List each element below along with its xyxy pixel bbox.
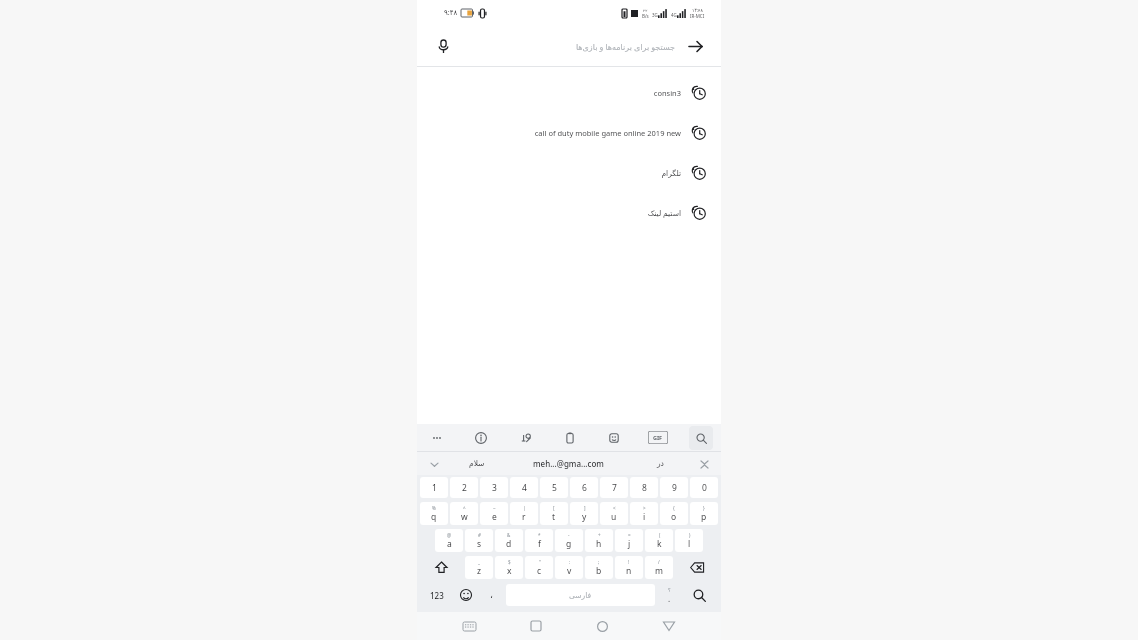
button[interactable]: تلگرام: [417, 153, 721, 193]
button[interactable]: Recent apps: [522, 612, 550, 640]
staticText: call of duty mobile game online 2019 new: [429, 128, 681, 138]
staticText: v: [567, 565, 572, 577]
button[interactable]: =: [615, 529, 643, 552]
button[interactable]: _: [465, 556, 493, 579]
button[interactable]: Expand suggestions: [426, 456, 442, 472]
staticText: k: [657, 538, 662, 550]
staticText: ۲۲: [643, 8, 648, 13]
button[interactable]: Search: [682, 583, 717, 607]
button[interactable]: Voice search: [429, 32, 457, 60]
staticText: ): [689, 532, 691, 538]
button[interactable]: 8: [630, 477, 658, 498]
button[interactable]: >: [630, 502, 658, 525]
staticText: .: [668, 593, 671, 604]
button[interactable]: 2: [450, 477, 478, 498]
button[interactable]: {: [660, 502, 688, 525]
button[interactable]: ~: [480, 502, 508, 525]
button[interactable]: More options: [425, 426, 449, 450]
button[interactable]: [: [540, 502, 568, 525]
button[interactable]: 6: [570, 477, 598, 498]
button[interactable]: ^: [450, 502, 478, 525]
button[interactable]: |: [510, 502, 538, 525]
button[interactable]: meh...@gma...com: [512, 452, 625, 475]
button[interactable]: سلام: [442, 452, 512, 475]
button[interactable]: (: [645, 529, 673, 552]
button[interactable]: Search: [689, 426, 713, 450]
button[interactable]: Emoji: [452, 583, 479, 607]
button[interactable]: Back: [681, 32, 709, 60]
button[interactable]: !: [615, 556, 643, 579]
button[interactable]: Translate: [514, 426, 538, 450]
staticText: 0: [702, 482, 707, 494]
button[interactable]: 123: [421, 583, 452, 607]
staticText: 7: [612, 482, 617, 494]
button[interactable]: &: [495, 529, 523, 552]
staticText: z: [477, 565, 481, 577]
button[interactable]: }: [690, 502, 718, 525]
staticText: +: [598, 532, 601, 538]
staticText: ": [539, 559, 541, 565]
staticText: y: [582, 511, 587, 523]
button[interactable]: فارسی: [506, 584, 655, 606]
button[interactable]: #: [465, 529, 493, 552]
button[interactable]: ؟: [657, 583, 682, 607]
button[interactable]: 9: [660, 477, 688, 498]
button[interactable]: consin3: [417, 73, 721, 113]
button[interactable]: 7: [600, 477, 628, 498]
button[interactable]: ): [675, 529, 703, 552]
staticText: (: [659, 532, 661, 538]
button[interactable]: ]: [570, 502, 598, 525]
staticText: ]: [584, 505, 586, 511]
button[interactable]: 3: [480, 477, 508, 498]
button[interactable]: <: [600, 502, 628, 525]
staticText: 3G: [652, 12, 658, 18]
button[interactable]: 0: [690, 477, 718, 498]
staticText: 1: [432, 482, 437, 494]
button[interactable]: 4: [510, 477, 538, 498]
staticText: B/s: [642, 13, 649, 19]
button[interactable]: Collapse: [696, 456, 712, 472]
staticText: s: [477, 538, 482, 550]
staticText: :: [569, 559, 571, 565]
button[interactable]: Home: [588, 612, 616, 640]
button[interactable]: -: [555, 529, 583, 552]
staticText: 4: [522, 482, 527, 494]
button[interactable]: ،: [479, 583, 504, 607]
button[interactable]: :: [555, 556, 583, 579]
button[interactable]: 1: [420, 477, 448, 498]
staticText: e: [492, 511, 497, 523]
button[interactable]: Hide keyboard: [655, 612, 683, 640]
button[interactable]: در: [625, 452, 696, 475]
staticText: a: [447, 538, 452, 550]
staticText: #: [478, 532, 481, 538]
button[interactable]: GIF: [647, 429, 669, 446]
button[interactable]: ": [525, 556, 553, 579]
staticText: ۹:۴۸: [444, 8, 458, 18]
staticText: h: [596, 538, 602, 550]
staticText: استیم لینک: [429, 208, 681, 218]
staticText: ;: [598, 559, 600, 565]
button[interactable]: /: [645, 556, 673, 579]
button[interactable]: @: [435, 529, 463, 552]
staticText: w: [461, 511, 468, 523]
button[interactable]: Switch keyboard: [455, 612, 483, 640]
staticText: |: [523, 505, 526, 511]
staticText: <: [613, 505, 616, 511]
staticText: فارسی: [569, 591, 592, 600]
staticText: r: [522, 511, 526, 523]
button[interactable]: Info: [469, 426, 493, 450]
button[interactable]: Clipboard: [558, 426, 582, 450]
button[interactable]: %: [420, 502, 448, 525]
button[interactable]: Stickers: [602, 426, 626, 450]
staticText: ۱۳:۴۸: [692, 7, 703, 13]
button[interactable]: *: [525, 529, 553, 552]
button[interactable]: +: [585, 529, 613, 552]
button[interactable]: call of duty mobile game online 2019 new: [417, 113, 721, 153]
button[interactable]: ;: [585, 556, 613, 579]
button[interactable]: 5: [540, 477, 568, 498]
button[interactable]: Shift: [419, 555, 464, 580]
button[interactable]: $: [495, 556, 523, 579]
button[interactable]: Backspace: [674, 555, 719, 580]
button[interactable]: استیم لینک: [417, 193, 721, 233]
staticText: p: [701, 511, 707, 523]
